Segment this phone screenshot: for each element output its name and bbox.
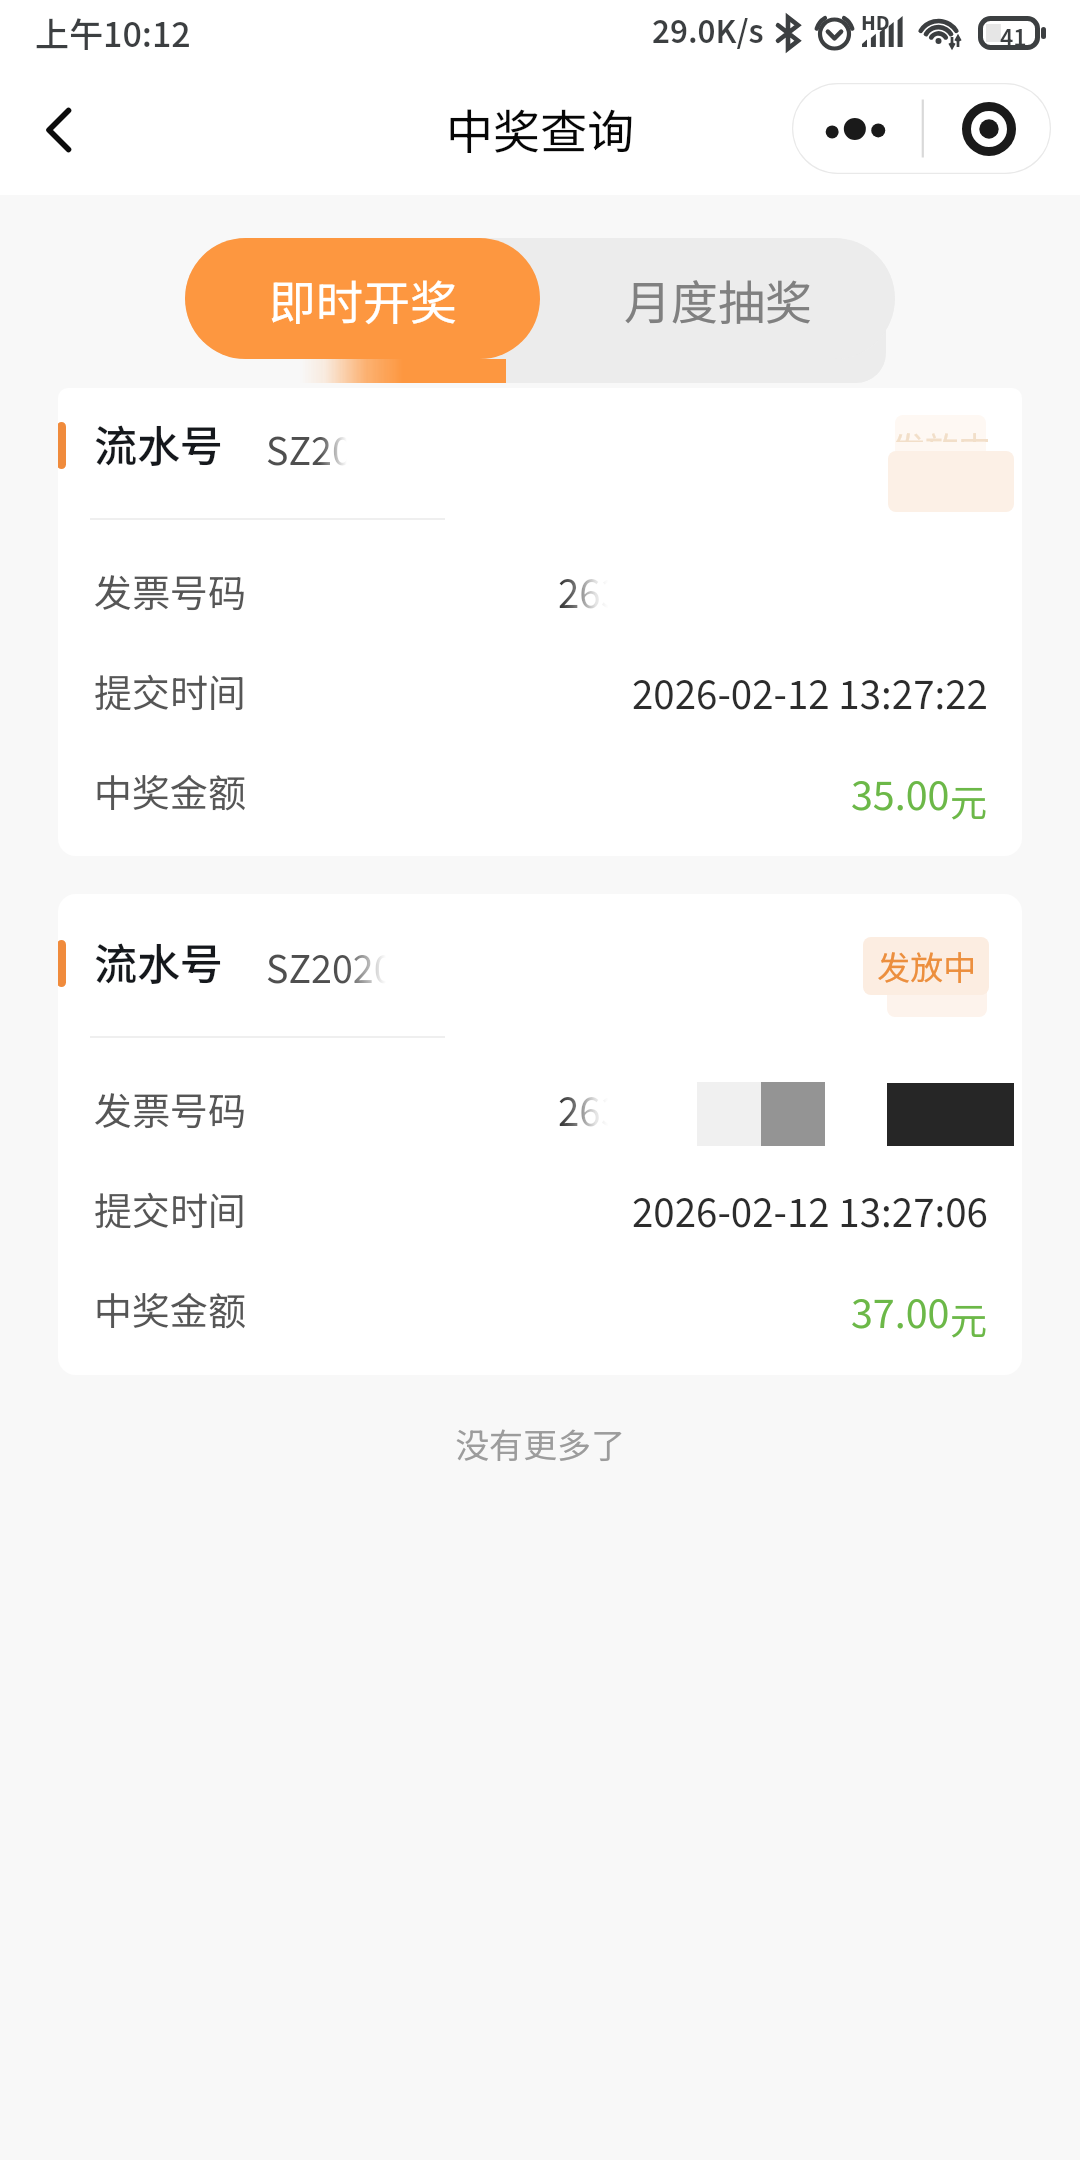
staticText: 即时开奖: [269, 265, 457, 333]
staticText: 35.00: [851, 765, 950, 828]
staticText: 发票号码: [94, 1081, 247, 1136]
staticText: 上午10:12: [35, 8, 191, 57]
staticText: 263: [558, 1082, 623, 1143]
staticText: 元: [950, 1291, 987, 1345]
button[interactable]: Close mini program: [927, 83, 1051, 174]
button[interactable]: 月度抽奖: [540, 238, 895, 359]
button[interactable]: 流水号: [58, 894, 1022, 1375]
staticText: HD: [861, 7, 890, 38]
staticText: 中奖查询: [446, 94, 634, 162]
button[interactable]: 即时开奖: [185, 238, 540, 359]
staticText: 提交时间: [94, 663, 247, 718]
staticText: 没有更多了: [455, 1419, 625, 1468]
staticText: 29.0K/s: [652, 7, 764, 57]
staticText: 中奖金额: [94, 1281, 247, 1336]
staticText: 37.00: [851, 1283, 950, 1346]
button[interactable]: 流水号: [58, 388, 1022, 856]
staticText: 流水号: [94, 930, 223, 992]
staticText: 中奖金额: [94, 763, 247, 818]
staticText: 2026-02-12 13:27:22: [632, 665, 988, 726]
staticText: 2026-02-12 13:27:06: [632, 1183, 988, 1244]
staticText: 263: [558, 564, 623, 625]
button[interactable]: Back: [19, 86, 107, 174]
staticText: 发放中: [892, 423, 991, 442]
staticText: 41: [1000, 19, 1027, 56]
staticText: SZ2020: [266, 940, 395, 1000]
staticText: SZ20: [266, 422, 353, 482]
staticText: 提交时间: [94, 1181, 247, 1236]
staticText: 流水号: [94, 412, 223, 474]
button[interactable]: More options: [792, 83, 922, 174]
staticText: 发票号码: [94, 563, 247, 618]
staticText: 发放中: [877, 942, 976, 990]
staticText: 月度抽奖: [624, 265, 812, 333]
staticText: 元: [950, 773, 987, 827]
